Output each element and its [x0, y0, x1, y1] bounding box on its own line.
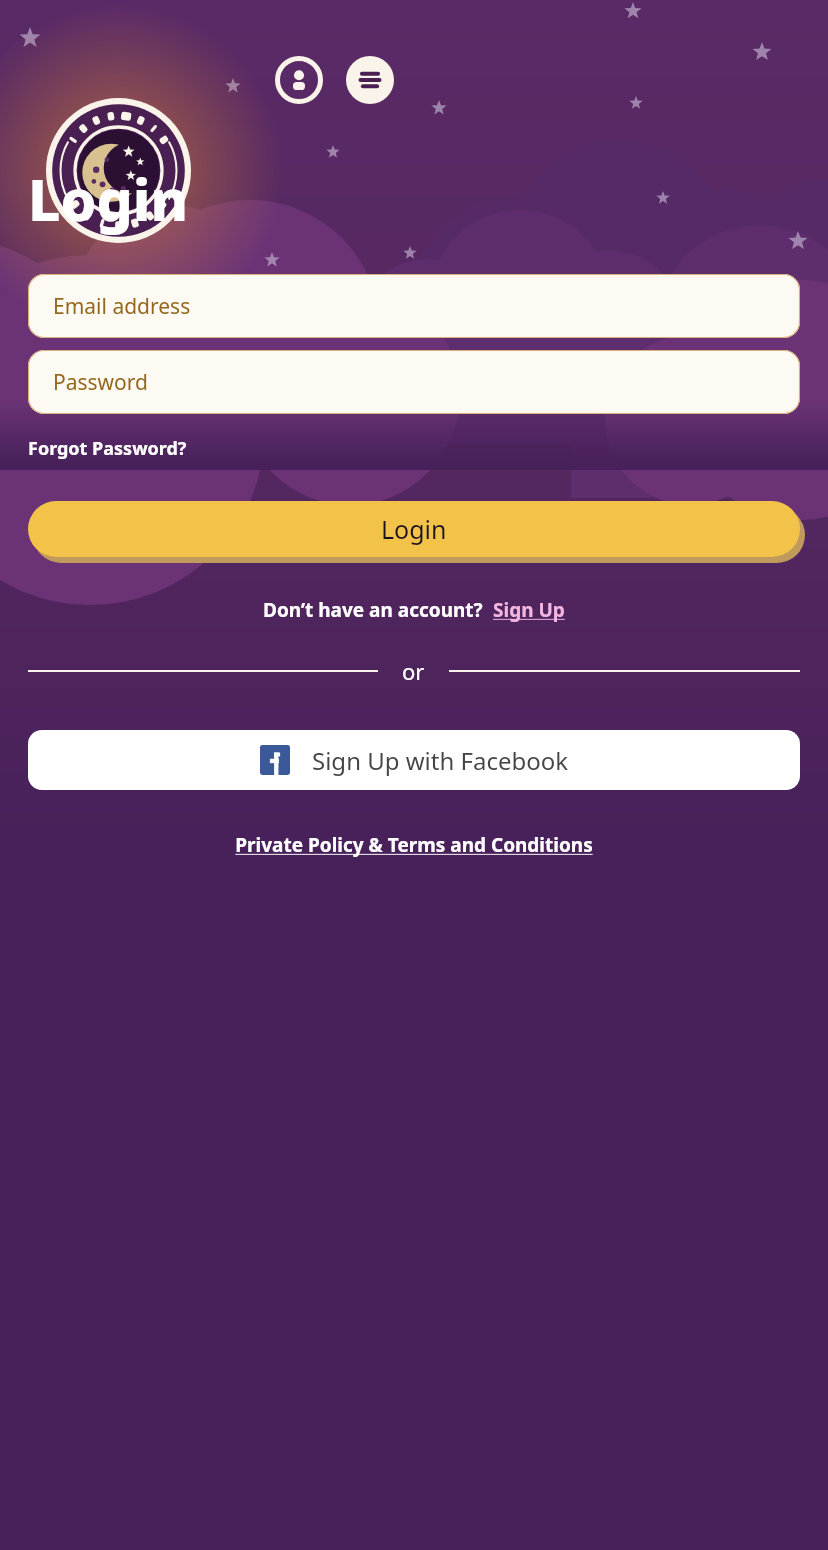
button[interactable]: Forgot Password?	[28, 436, 187, 461]
button[interactable]: Email address	[28, 274, 800, 338]
staticText: Login	[28, 160, 188, 238]
button[interactable]: Login	[28, 501, 800, 557]
button[interactable]: Account	[275, 56, 323, 104]
staticText: Sign Up with Facebook	[312, 744, 569, 777]
staticText: or	[402, 656, 425, 686]
button[interactable]: Insomnia Cookies logo	[46, 98, 191, 243]
button[interactable]: Password	[28, 350, 800, 414]
button[interactable]: Menu	[346, 56, 394, 104]
staticText: Email address	[53, 292, 191, 321]
staticText: Sign Up	[493, 597, 565, 623]
staticText: Password	[53, 368, 148, 397]
button[interactable]: Sign Up with Facebook	[28, 730, 800, 790]
button[interactable]: Sign Up	[493, 597, 565, 623]
staticText: Private Policy & Terms and Conditions	[235, 832, 593, 858]
staticText: Login	[381, 512, 447, 546]
button[interactable]: Private Policy & Terms and Conditions	[235, 832, 593, 858]
staticText: Don’t have an account?	[263, 597, 483, 623]
staticText: Forgot Password?	[28, 436, 187, 461]
